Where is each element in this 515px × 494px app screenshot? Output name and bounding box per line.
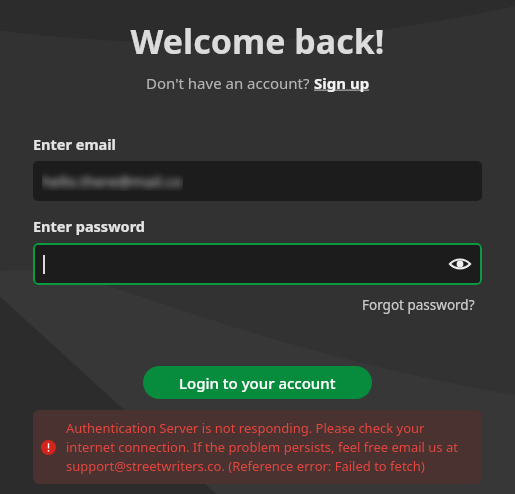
button[interactable]: Login to your account (143, 366, 372, 399)
staticText: Enter password (33, 216, 145, 236)
staticText: Don't have an account? (146, 73, 314, 93)
button[interactable]: Sign up (314, 73, 370, 93)
staticText: hello.there@mail.co (42, 171, 183, 191)
button[interactable]: Show password (33, 243, 482, 285)
button[interactable]: Show password (445, 249, 475, 279)
button[interactable]: Forgot password? (362, 296, 475, 314)
staticText: Forgot password? (362, 296, 475, 314)
staticText: Welcome back! (0, 18, 515, 64)
staticText: Sign up (314, 73, 370, 93)
staticText: Login to your account (179, 373, 336, 393)
staticText: Enter email (33, 134, 116, 154)
button[interactable]: hello.there@mail.co (33, 161, 482, 201)
staticText: Authentication Server is not responding.… (66, 419, 474, 475)
